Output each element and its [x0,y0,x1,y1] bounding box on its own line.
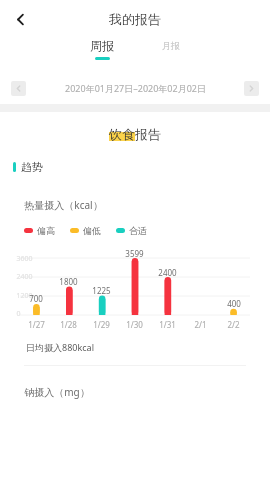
staticText: 1200 [16,291,33,301]
staticText: 周报 [90,38,114,53]
staticText: 2/1 [194,319,207,330]
button[interactable]: 热量摄入（kcal） [13,185,257,419]
staticText: 1800 [59,276,78,287]
button[interactable]: 周报 [82,38,122,60]
staticText: 偏低 [83,225,101,236]
staticText: 饮食 [109,126,135,142]
staticText: 偏高 [37,225,55,236]
staticText: 3599 [125,248,144,259]
staticText: 月报 [162,40,180,51]
staticText: 2400 [158,267,177,278]
staticText: 2400 [16,272,33,282]
staticText: 我的报告 [109,11,161,27]
staticText: 日均摄入880kcal [26,341,94,353]
staticText: 趋势 [21,160,43,174]
staticText: 1/29 [93,319,110,330]
staticText: 1/30 [126,319,143,330]
staticText: 钠摄入（mg） [24,385,90,399]
staticText: 1/28 [60,319,77,330]
staticText: 1/31 [159,319,176,330]
staticText: 2/2 [227,319,240,330]
staticText: 0 [16,309,21,319]
button[interactable]: Previous [11,81,26,96]
staticText: 400 [227,298,241,309]
staticText: 3600 [16,254,33,264]
staticText: 1/27 [28,319,45,330]
button[interactable]: Back [4,3,36,35]
staticText: 热量摄入（kcal） [24,198,103,212]
staticText: 2020年01月27日–2020年02月02日 [65,82,206,94]
button[interactable]: 月报 [154,38,188,53]
staticText: 合适 [129,225,147,236]
staticText: 报告 [135,126,161,142]
staticText: 700 [29,293,43,304]
staticText: 1225 [92,285,111,296]
button[interactable]: Next [244,81,259,96]
